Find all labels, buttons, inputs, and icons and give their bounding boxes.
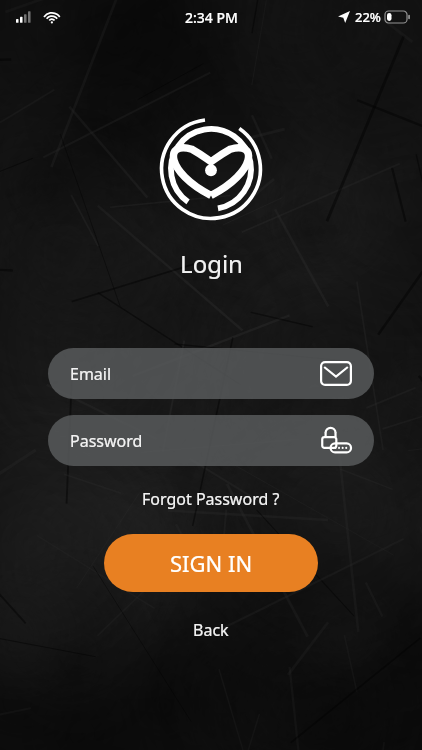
staticText: 22% [355, 8, 381, 26]
button[interactable]: Email input field [48, 348, 374, 399]
staticText: Email [70, 363, 112, 385]
staticText: Back [193, 619, 229, 641]
button[interactable]: Back [183, 615, 239, 645]
staticText: Login [180, 247, 243, 280]
button[interactable]: Forgot Password ? [134, 484, 288, 514]
button[interactable]: Password input field [48, 415, 374, 466]
staticText: 2:34 PM [185, 8, 238, 27]
staticText: Forgot Password ? [142, 488, 280, 510]
staticText: SIGN IN [170, 548, 253, 578]
button[interactable]: SIGN IN [104, 534, 318, 592]
staticText: Password [70, 430, 143, 452]
